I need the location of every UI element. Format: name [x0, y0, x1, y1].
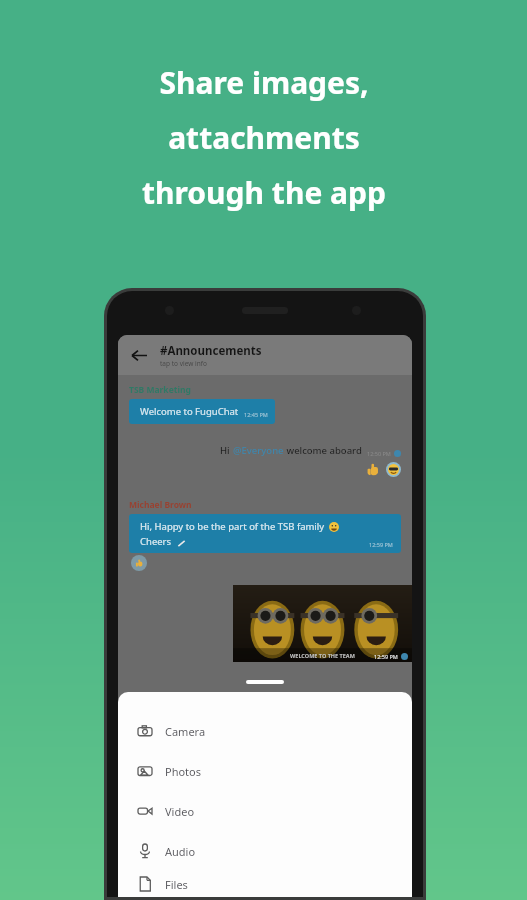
button[interactable]: Welcome to FuguChat	[129, 399, 275, 424]
staticText: Welcome to FuguChat	[140, 405, 239, 418]
button[interactable]: Hi, Happy to be the part of the TSB fami…	[129, 514, 401, 553]
button[interactable]	[131, 555, 147, 571]
staticText: 12:50 PM	[367, 450, 391, 457]
button[interactable]: Video	[118, 791, 412, 831]
staticText: 12:59 PM	[374, 653, 398, 660]
button[interactable]: Camera	[118, 711, 412, 751]
staticText: Files	[165, 877, 188, 892]
staticText: attachments	[168, 117, 360, 158]
button[interactable]: Back	[128, 344, 150, 366]
button[interactable]	[386, 462, 401, 477]
staticText: @Everyone	[233, 444, 284, 457]
staticText: Audio	[165, 844, 196, 859]
button[interactable]: Back	[118, 335, 412, 375]
button[interactable]: Audio	[118, 831, 412, 871]
staticText: through the app	[142, 172, 386, 213]
button[interactable]: Photos	[118, 751, 412, 791]
button[interactable]: Files	[118, 871, 412, 897]
staticText: TSB Marketing	[129, 384, 191, 396]
staticText: tap to view info	[160, 359, 207, 368]
button[interactable]: Image attachment	[233, 585, 412, 662]
staticText: #Announcements	[160, 343, 262, 359]
staticText: 12:59 PM	[369, 541, 393, 548]
staticText: Hi, Happy to be the part of the TSB fami…	[140, 520, 325, 533]
staticText: Michael Brown	[129, 499, 192, 511]
staticText: Cheers	[140, 535, 172, 548]
staticText: 12:45 PM	[244, 411, 268, 418]
staticText: Video	[165, 804, 195, 819]
staticText: welcome aboard	[284, 444, 362, 457]
staticText: Hi	[220, 444, 233, 457]
button[interactable]	[366, 463, 379, 476]
staticText: WELCOME TO THE TEAM	[290, 652, 355, 659]
staticText: Camera	[165, 724, 206, 739]
staticText: Photos	[165, 764, 202, 779]
button[interactable]: Hi	[220, 444, 401, 457]
staticText: Share images,	[159, 62, 369, 103]
